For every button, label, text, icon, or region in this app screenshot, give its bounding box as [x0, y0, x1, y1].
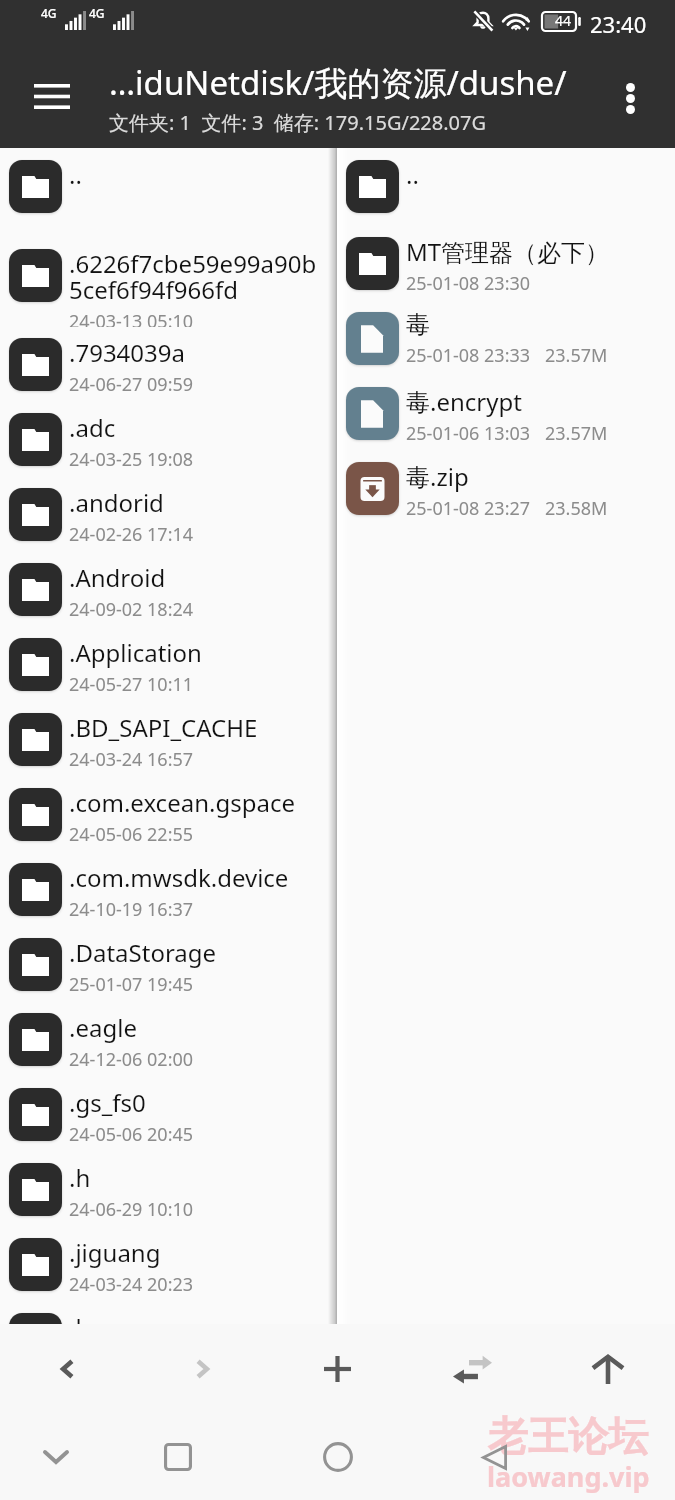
staticText: .7934039a	[69, 336, 185, 369]
button[interactable]: Forward	[135, 1324, 270, 1413]
button[interactable]: Menu	[24, 68, 80, 124]
staticText: 24-06-29 10:10	[69, 1197, 194, 1222]
staticText: .adc	[69, 411, 116, 444]
staticText: 23.57M	[545, 421, 608, 446]
button[interactable]: .BD_SAPI_CACHE	[0, 701, 328, 776]
staticText: 毒.zip	[406, 460, 469, 493]
staticText: 24-03-13 05:10	[69, 309, 194, 327]
button[interactable]: 毒	[337, 300, 675, 375]
staticText: 25-01-06 13:03	[406, 421, 531, 446]
button[interactable]: .com.mwsdk.device	[0, 851, 328, 926]
button[interactable]: Home	[308, 1427, 368, 1487]
button[interactable]: .Android	[0, 551, 328, 626]
button[interactable]: .6226f7cbe59e99a90b 5cef6f94f966fd	[0, 237, 328, 326]
staticText: 24-03-24 20:23	[69, 1272, 194, 1297]
staticText: ..	[406, 158, 419, 191]
staticText: 25-01-07 19:45	[69, 972, 194, 997]
button[interactable]: .kuwo	[0, 1301, 328, 1324]
staticText: 毒.encrypt	[406, 385, 522, 418]
staticText: 23.57M	[545, 343, 608, 368]
staticText: 24-05-27 10:11	[69, 672, 194, 697]
button[interactable]: 毒.encrypt	[337, 375, 675, 450]
button[interactable]: MT管理器（必下）	[337, 225, 675, 300]
staticText: 24-02-26 17:14	[69, 522, 194, 547]
button[interactable]: New	[270, 1324, 405, 1413]
staticText: 44	[555, 11, 572, 30]
staticText: 文件夹: 1 文件: 3 储存: 179.15G/228.07G	[109, 109, 487, 136]
staticText: 24-03-24 16:57	[69, 747, 194, 772]
button[interactable]: .jiguang	[0, 1226, 328, 1301]
button[interactable]: .DataStorage	[0, 926, 328, 1001]
staticText: 4G	[89, 5, 105, 21]
staticText: 25-01-08 23:27	[406, 496, 531, 521]
staticText: .gs_fs0	[69, 1086, 146, 1119]
staticText: .andorid	[69, 486, 164, 519]
button[interactable]: Recents	[148, 1427, 208, 1487]
button[interactable]: ..	[0, 148, 328, 237]
button[interactable]: .7934039a	[0, 326, 328, 401]
staticText: 25-01-08 23:33	[406, 343, 531, 368]
staticText: MT管理器（必下）	[406, 235, 610, 268]
staticText: laowang.vip	[487, 1458, 650, 1495]
staticText: .jiguang	[69, 1236, 161, 1269]
staticText: .com.excean.gspace	[69, 786, 295, 819]
staticText: .Android	[69, 561, 166, 594]
button[interactable]: Swap panes	[405, 1324, 540, 1413]
button[interactable]: .h	[0, 1151, 328, 1226]
staticText: 毒	[406, 310, 430, 340]
staticText: 24-12-06 02:00	[69, 1047, 194, 1072]
staticText: 老王论坛	[488, 1411, 648, 1461]
staticText: 24-05-06 22:55	[69, 822, 194, 847]
button[interactable]: 毒.zip	[337, 450, 675, 525]
staticText: ..	[69, 158, 82, 191]
staticText: 23:40	[590, 9, 647, 39]
staticText: .com.mwsdk.device	[69, 861, 289, 894]
button[interactable]: More options	[602, 70, 658, 126]
button[interactable]: Hide keyboard	[26, 1427, 86, 1487]
staticText: …iduNetdisk/我的资源/dushe/	[109, 60, 567, 105]
staticText: .eagle	[69, 1011, 137, 1044]
button[interactable]: .andorid	[0, 476, 328, 551]
button[interactable]: .com.excean.gspace	[0, 776, 328, 851]
button[interactable]: .Application	[0, 626, 328, 701]
staticText: .6226f7cbe59e99a90b 5cef6f94f966fd	[69, 247, 317, 306]
staticText: .BD_SAPI_CACHE	[69, 711, 258, 744]
staticText: 23.58M	[545, 496, 608, 521]
staticText: .DataStorage	[69, 936, 217, 969]
staticText: 24-10-19 16:37	[69, 897, 194, 922]
staticText: 24-05-06 20:45	[69, 1122, 194, 1147]
button[interactable]: .eagle	[0, 1001, 328, 1076]
button[interactable]: .gs_fs0	[0, 1076, 328, 1151]
staticText: 24-06-27 09:59	[69, 372, 194, 397]
staticText: 24-09-02 18:24	[69, 597, 194, 622]
staticText: 25-01-08 23:30	[406, 271, 531, 296]
staticText: 24-03-25 19:08	[69, 447, 194, 472]
staticText: .Application	[69, 636, 202, 669]
button[interactable]: ..	[337, 148, 675, 225]
staticText: .h	[69, 1161, 91, 1194]
staticText: 4G	[41, 5, 57, 21]
button[interactable]: Back	[464, 1427, 524, 1487]
staticText: .kuwo	[69, 1311, 137, 1324]
button[interactable]: Up	[540, 1324, 675, 1413]
button[interactable]: Back	[0, 1324, 135, 1413]
button[interactable]: .adc	[0, 401, 328, 476]
